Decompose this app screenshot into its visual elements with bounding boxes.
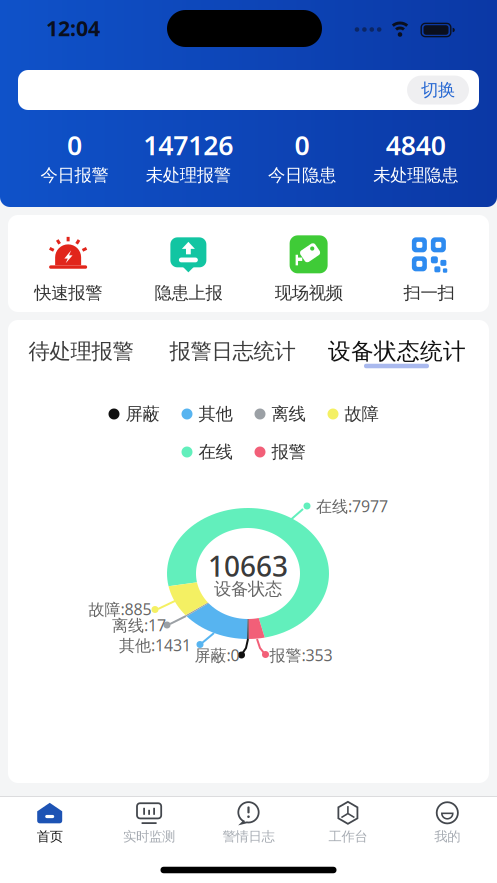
staticText: 今日隐患 — [268, 165, 336, 186]
staticText: 4840 — [386, 127, 446, 162]
staticText: 实时监测 — [123, 828, 175, 845]
staticText: 现场视频 — [275, 282, 343, 304]
staticText: 报警:353 — [269, 644, 332, 666]
button[interactable]: 切换 — [407, 75, 469, 104]
staticText: 待处理报警 — [28, 338, 133, 365]
button[interactable]: 隐患上报 — [128, 235, 248, 304]
button[interactable]: 工作台 — [298, 801, 398, 845]
staticText: 设备状态统计 — [328, 338, 466, 365]
button[interactable]: 现场视频 — [248, 235, 369, 304]
staticText: 其他 — [198, 403, 232, 425]
staticText: 未处理报警 — [146, 165, 231, 186]
staticText: 快速报警 — [34, 282, 102, 304]
staticText: 我的 — [434, 828, 460, 845]
staticText: 隐患上报 — [154, 282, 222, 304]
button[interactable]: 我的 — [398, 801, 497, 845]
staticText: 屏蔽 — [125, 403, 159, 425]
staticText: 今日报警 — [40, 165, 108, 186]
staticText: 在线:7977 — [316, 495, 388, 517]
button[interactable]: 报警日志统计 — [169, 338, 295, 365]
staticText: 切换 — [421, 79, 455, 101]
staticText: 0 — [67, 127, 82, 162]
staticText: 离线:17 — [112, 614, 166, 636]
staticText: 10663 — [208, 547, 288, 585]
staticText: 报警日志统计 — [169, 338, 295, 365]
staticText: 设备状态 — [214, 578, 282, 600]
staticText: 未处理隐患 — [373, 165, 458, 186]
button[interactable]: 警情日志 — [199, 801, 298, 845]
staticText: 屏蔽:0 — [194, 644, 239, 666]
button[interactable]: 首页 — [0, 801, 99, 845]
staticText: 其他:1431 — [119, 634, 191, 656]
button[interactable]: 快速报警 — [8, 235, 128, 304]
staticText: 147126 — [143, 127, 233, 162]
staticText: 离线 — [271, 403, 305, 425]
staticText: 工作台 — [328, 828, 367, 845]
staticText: 警情日志 — [222, 828, 274, 845]
staticText: 首页 — [37, 828, 63, 845]
staticText: 报警 — [271, 441, 305, 463]
button[interactable]: 搜索 — [18, 70, 479, 110]
staticText: 在线 — [198, 441, 232, 463]
button[interactable]: 设备状态统计 — [328, 338, 466, 365]
button[interactable]: 扫一扫 — [369, 235, 489, 304]
staticText: 扫一扫 — [403, 282, 454, 304]
staticText: 12:04 — [46, 14, 100, 42]
staticText: 故障:885 — [88, 598, 151, 620]
button[interactable]: 实时监测 — [99, 801, 199, 845]
staticText: 0 — [294, 127, 309, 162]
staticText: 故障 — [344, 403, 378, 425]
button[interactable]: 待处理报警 — [28, 338, 133, 365]
